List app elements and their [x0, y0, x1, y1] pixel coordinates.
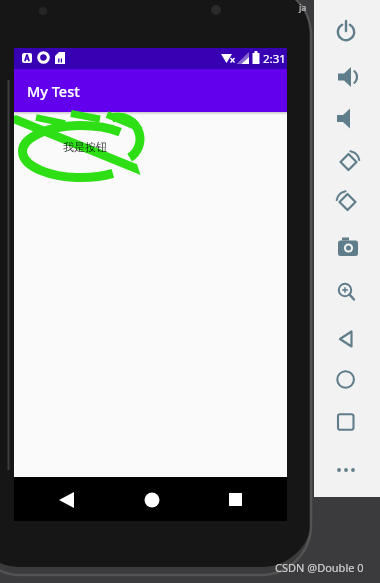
button[interactable]	[326, 454, 366, 486]
staticText: CSDN @Double 0	[275, 560, 364, 575]
staticText: 2:31	[263, 51, 286, 67]
button[interactable]	[326, 232, 366, 264]
button[interactable]	[326, 61, 366, 93]
button[interactable]	[326, 406, 366, 438]
button[interactable]	[326, 102, 366, 134]
button[interactable]	[326, 186, 366, 218]
button[interactable]	[214, 485, 260, 515]
button[interactable]	[326, 323, 366, 355]
button[interactable]	[44, 485, 90, 515]
button[interactable]	[129, 485, 175, 515]
button[interactable]	[14, 112, 149, 187]
staticText: 我是按钮	[63, 140, 107, 154]
button[interactable]	[326, 274, 366, 306]
button[interactable]	[326, 146, 366, 178]
button[interactable]	[326, 363, 366, 395]
staticText: My Test	[27, 81, 80, 101]
button[interactable]	[326, 16, 366, 48]
staticText: ja	[299, 1, 307, 13]
